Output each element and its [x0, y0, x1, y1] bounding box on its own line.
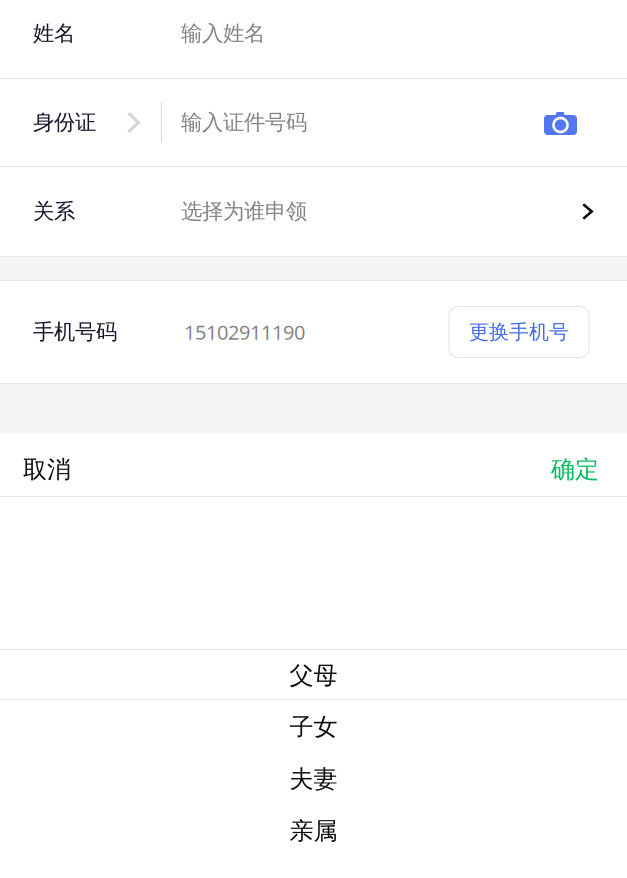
button[interactable]: 关系 [0, 167, 627, 256]
button[interactable]: 身份证 [0, 79, 627, 166]
button[interactable]: 子女 [0, 700, 627, 752]
staticText: 关系 [33, 198, 75, 225]
staticText: 输入证件号码 [181, 109, 307, 136]
staticText: 亲属 [289, 816, 337, 846]
staticText: 选择为谁申领 [181, 198, 307, 225]
staticText: 确定 [551, 455, 599, 484]
staticText: 姓名 [33, 20, 75, 47]
staticText: 夫妻 [289, 764, 337, 794]
button[interactable]: 姓名 [0, 0, 627, 78]
staticText: 手机号码 [33, 319, 117, 345]
button[interactable]: 取消 [0, 433, 91, 496]
staticText: 15102911190 [184, 319, 305, 345]
staticText: 输入姓名 [181, 20, 265, 47]
staticText: 子女 [289, 712, 337, 742]
staticText: 身份证 [33, 109, 96, 136]
staticText: 更换手机号 [469, 320, 569, 344]
button[interactable]: 亲属 [0, 804, 627, 856]
staticText: 父母 [289, 661, 337, 690]
button[interactable]: 夫妻 [0, 752, 627, 804]
staticText: 取消 [23, 455, 71, 484]
button[interactable]: 更换手机号 [449, 306, 589, 357]
button[interactable]: 确定 [531, 433, 627, 496]
button[interactable]: 父母 [0, 650, 627, 699]
